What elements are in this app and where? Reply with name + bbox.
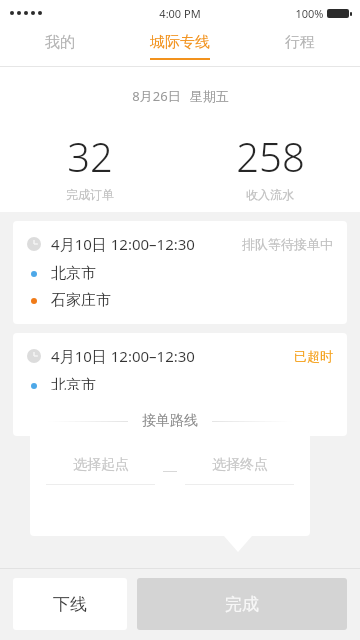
staticText: 258 bbox=[236, 129, 305, 183]
button[interactable]: 选择终点 bbox=[185, 456, 294, 485]
button[interactable]: 行程 bbox=[240, 26, 360, 66]
staticText: 4月10日 12:00–12:30 bbox=[51, 346, 195, 366]
staticText: 星期五 bbox=[190, 88, 229, 104]
staticText: 接单路线 bbox=[142, 412, 198, 430]
button[interactable]: 32 bbox=[0, 129, 180, 202]
staticText: 我的 bbox=[45, 33, 75, 52]
staticText: 100% bbox=[295, 6, 324, 21]
staticText: 4月10日 12:00–12:30 bbox=[51, 234, 195, 254]
staticText: 32 bbox=[67, 129, 113, 183]
staticText: 已超时 bbox=[294, 348, 333, 364]
staticText: 北京市 bbox=[51, 264, 96, 283]
staticText: 收入流水 bbox=[246, 187, 294, 202]
staticText: 石家庄市 bbox=[51, 291, 111, 310]
staticText: 北京市 bbox=[51, 376, 96, 395]
button[interactable]: 4月10日 12:00–12:30 bbox=[13, 221, 347, 324]
staticText: 完成订单 bbox=[66, 187, 114, 202]
button[interactable]: 下线 bbox=[13, 578, 127, 630]
staticText: 下线 bbox=[53, 594, 87, 615]
staticText: 4:00 PM bbox=[159, 6, 201, 21]
staticText: 选择起点 bbox=[73, 456, 129, 474]
button[interactable]: 城际专线 bbox=[120, 26, 240, 66]
button[interactable]: 4月10日 12:00–12:30 bbox=[13, 333, 347, 436]
button[interactable]: 258 bbox=[180, 129, 360, 202]
button[interactable]: 我的 bbox=[0, 26, 120, 66]
button[interactable]: 选择起点 bbox=[46, 456, 155, 485]
button[interactable]: 完成 bbox=[137, 578, 347, 630]
staticText: 行程 bbox=[285, 33, 315, 52]
staticText: 城际专线 bbox=[150, 33, 210, 52]
staticText: 选择终点 bbox=[212, 456, 268, 474]
staticText: 排队等待接单中 bbox=[242, 236, 333, 252]
staticText: 8月26日 bbox=[132, 87, 181, 105]
staticText: 完成 bbox=[225, 594, 259, 615]
